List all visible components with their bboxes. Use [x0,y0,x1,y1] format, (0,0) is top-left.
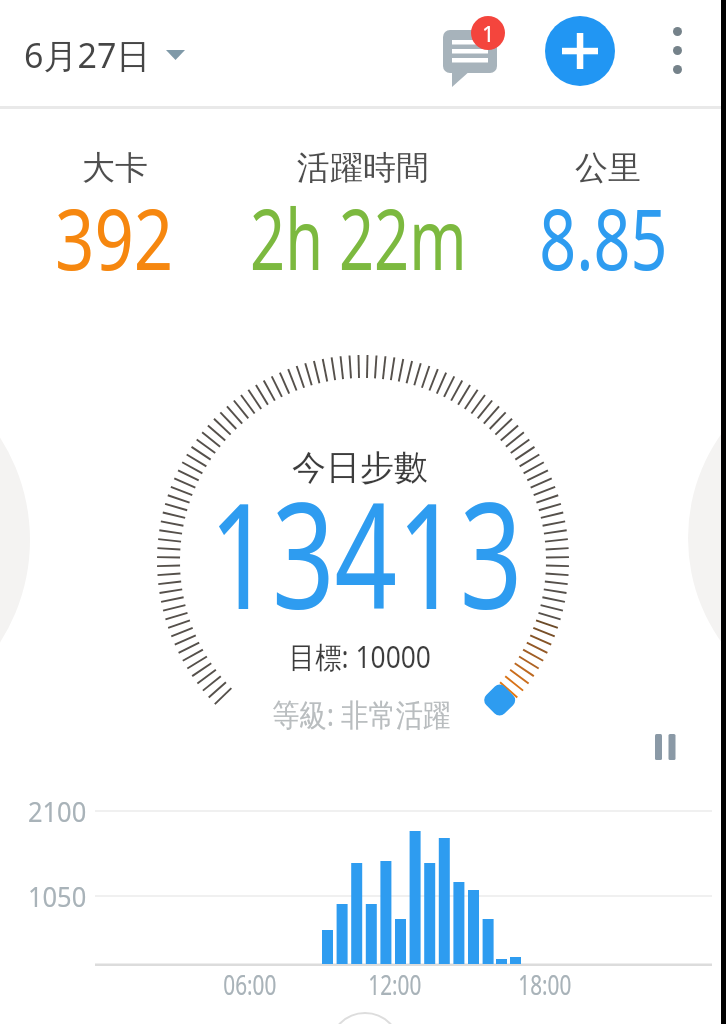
staticText: 等級: 非常活躍 [272,693,451,735]
staticText: 1 [482,18,495,48]
staticText: 8.85 [539,180,668,294]
staticText: 392 [55,180,174,294]
staticText: 大卡 [82,147,148,189]
staticText: 2100 [28,792,87,830]
staticText: 13413 [209,453,523,652]
staticText: 今日步數 [292,446,428,489]
staticText: 2h 22m [250,180,467,294]
staticText: 12:00 [368,965,422,1003]
staticText: 06:00 [223,965,277,1003]
staticText: 1050 [28,877,87,915]
staticText: 活躍時間 [297,147,429,189]
staticText: 18:00 [518,965,572,1003]
staticText: 公里 [575,147,641,189]
staticText: 6月27日 [24,32,151,78]
staticText: 目標: 10000 [289,636,431,677]
